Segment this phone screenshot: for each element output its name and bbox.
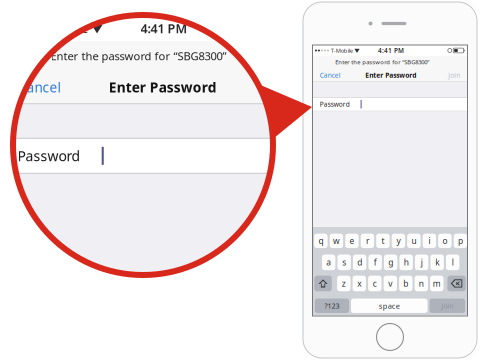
staticText: T-Mobile	[331, 47, 353, 54]
button[interactable]: c	[368, 276, 381, 291]
button[interactable]: k	[430, 255, 444, 270]
button[interactable]: w	[330, 234, 343, 248]
staticText: 4:41 PM	[378, 46, 404, 55]
button[interactable]: m	[430, 276, 443, 291]
staticText: l	[452, 257, 454, 268]
button[interactable]: o	[438, 234, 452, 248]
staticText: Join	[441, 301, 453, 311]
staticText: e	[349, 235, 354, 246]
button[interactable]: f	[368, 255, 382, 270]
staticText: f	[374, 257, 377, 268]
button[interactable]: Join	[429, 299, 465, 313]
staticText: Cancel	[320, 71, 341, 80]
button[interactable]: x	[353, 276, 366, 291]
button[interactable]: g	[384, 255, 397, 270]
button[interactable]: i	[423, 234, 436, 248]
button[interactable]: y	[392, 234, 405, 248]
staticText: n	[419, 278, 424, 289]
button[interactable]: Cancel	[318, 68, 343, 82]
staticText: 4:41 PM	[140, 20, 187, 37]
staticText: i	[428, 235, 430, 246]
button[interactable]: Shift	[314, 276, 332, 291]
staticText: p	[458, 235, 463, 246]
button[interactable]: space	[351, 299, 427, 313]
staticText: c	[373, 278, 377, 289]
button[interactable]: n	[415, 276, 428, 291]
button[interactable]: v	[384, 276, 397, 291]
staticText: Enter the password for “SBG8300”	[50, 48, 226, 63]
staticText: s	[342, 257, 346, 268]
staticText: Password	[17, 146, 80, 165]
button[interactable]: Cancel	[13, 70, 66, 104]
staticText: o	[442, 235, 447, 246]
staticText: T-Mobile	[40, 20, 88, 37]
staticText: Enter Password	[365, 71, 416, 80]
staticText: u	[411, 235, 416, 246]
staticText: q	[318, 235, 323, 246]
button[interactable]: a	[322, 255, 335, 270]
button[interactable]: r	[361, 234, 374, 248]
staticText: r	[366, 235, 369, 246]
button[interactable]: z	[337, 276, 350, 291]
staticText: Enter Password	[109, 78, 217, 97]
button[interactable]: q	[314, 234, 328, 248]
button[interactable]: Join	[277, 70, 309, 104]
button[interactable]: l	[446, 255, 459, 270]
button[interactable]: u	[407, 234, 421, 248]
button[interactable]: s	[337, 255, 351, 270]
button[interactable]: d	[353, 255, 366, 270]
button[interactable]: h	[399, 255, 413, 270]
button[interactable]: j	[415, 255, 428, 270]
staticText: Password	[320, 100, 350, 109]
staticText: Enter the password for “SBG8300”	[335, 58, 429, 66]
button[interactable]: ?123	[315, 299, 349, 313]
staticText: a	[326, 257, 331, 268]
staticText: k	[435, 257, 439, 268]
staticText: Cancel	[17, 78, 61, 96]
button[interactable]: b	[399, 276, 412, 291]
staticText: Join	[448, 71, 460, 80]
staticText: g	[388, 257, 393, 268]
button[interactable]: t	[376, 234, 390, 248]
staticText: v	[388, 278, 392, 289]
button[interactable]: Join	[446, 68, 462, 82]
button[interactable]: Delete	[447, 276, 466, 291]
button[interactable]: e	[345, 234, 359, 248]
staticText: x	[357, 278, 361, 289]
staticText: d	[357, 257, 362, 268]
staticText: ?123	[324, 301, 339, 311]
staticText: w	[333, 235, 340, 246]
staticText: space	[379, 301, 400, 311]
staticText: t	[381, 235, 384, 246]
staticText: h	[404, 257, 409, 268]
staticText: m	[433, 278, 441, 289]
staticText: j	[421, 257, 423, 268]
button[interactable]: p	[454, 234, 467, 248]
staticText: y	[396, 235, 400, 246]
staticText: Join	[281, 78, 305, 96]
staticText: b	[403, 278, 408, 289]
staticText: z	[342, 278, 346, 289]
